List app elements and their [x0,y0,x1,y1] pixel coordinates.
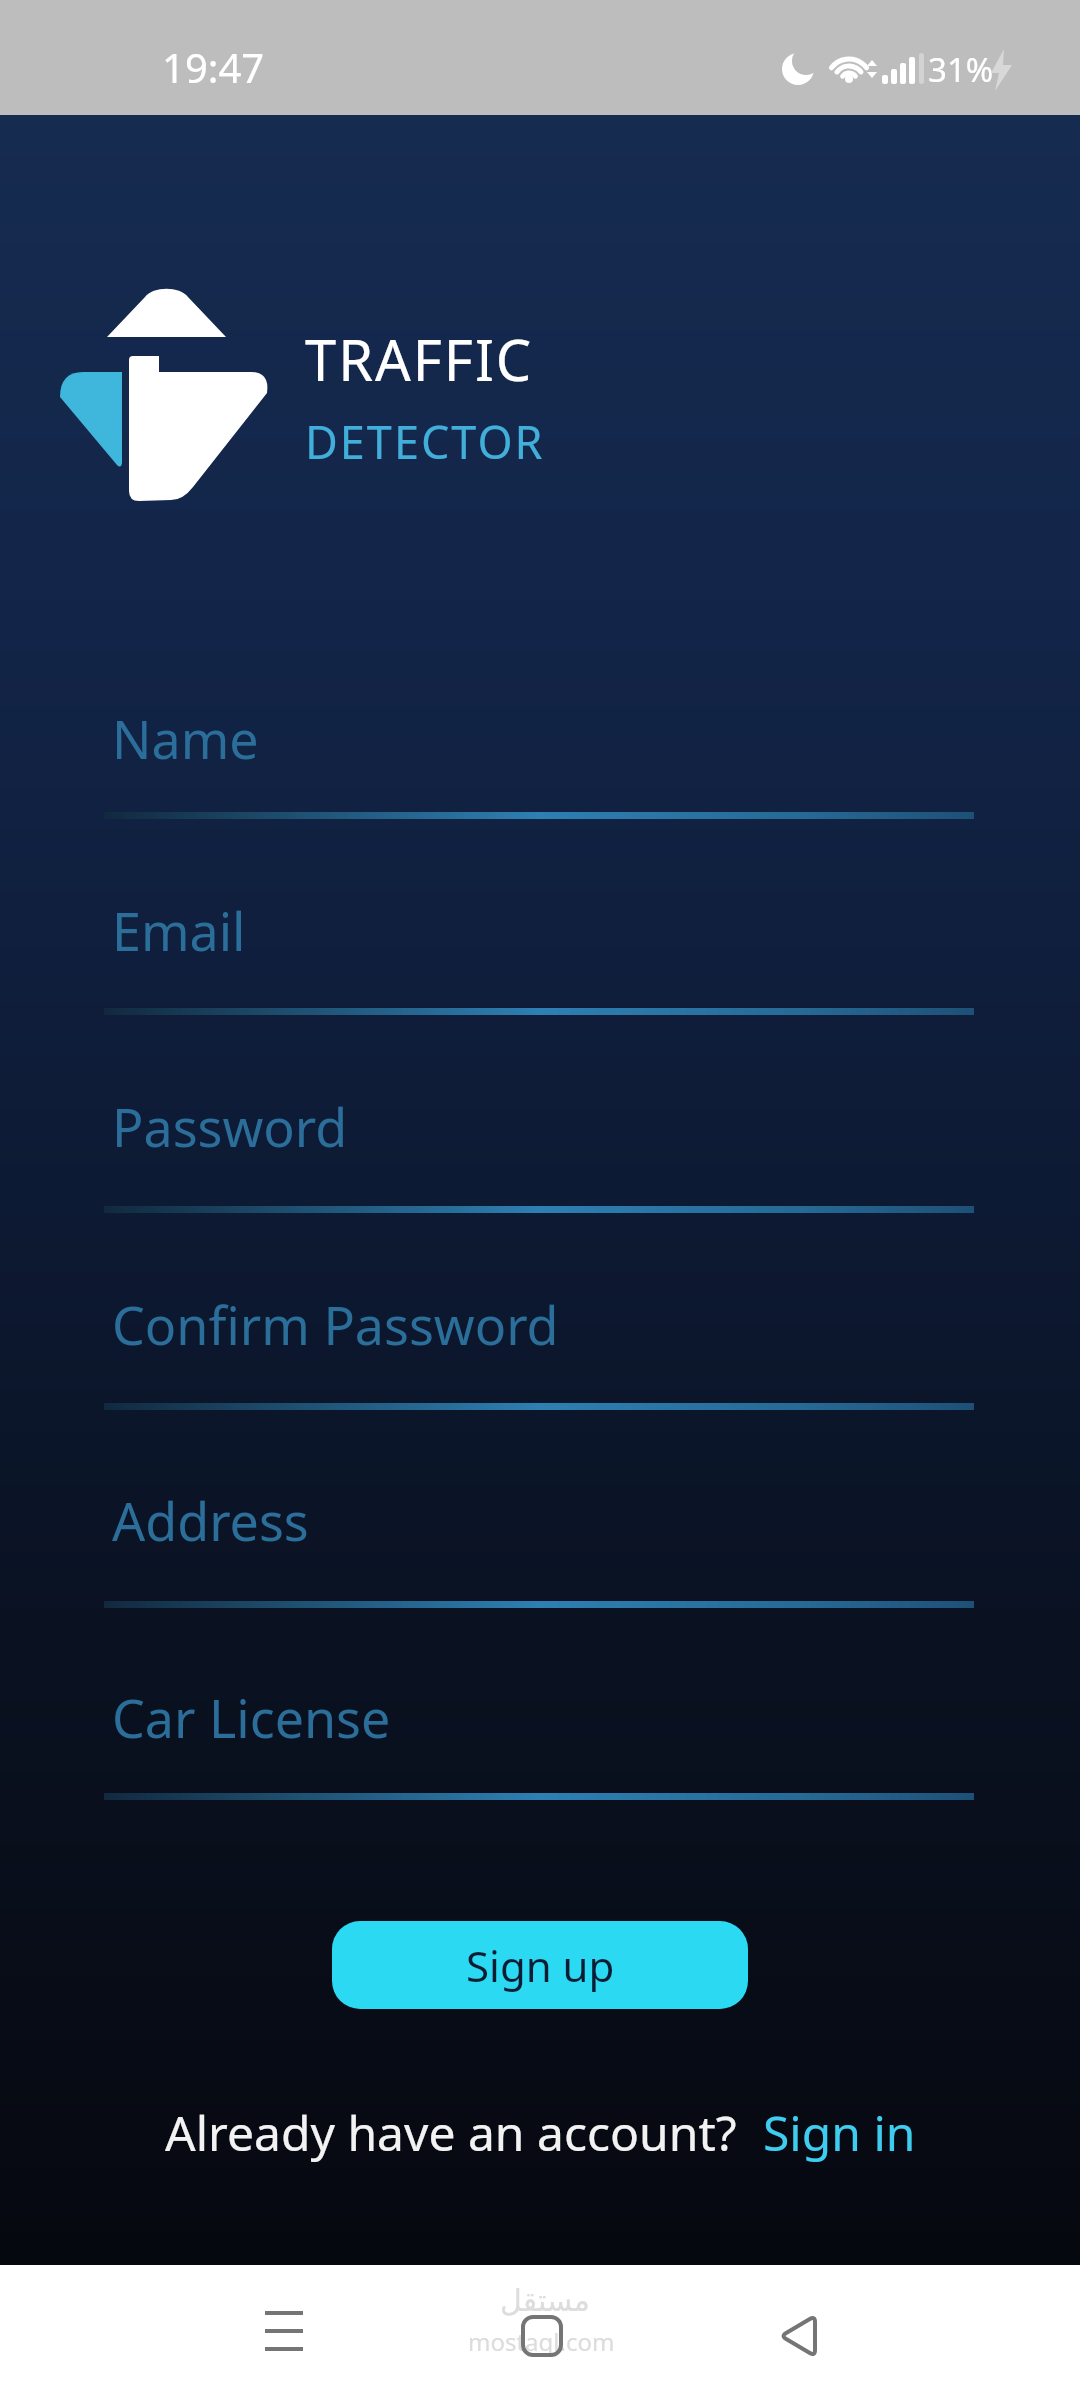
button[interactable]: Confirm Password [104,1289,974,1410]
button[interactable] [760,2293,840,2373]
button[interactable]: Car License [104,1682,974,1800]
staticText: Sign in [763,2100,916,2165]
button[interactable] [503,2293,583,2373]
staticText: mostaql.com [468,2325,615,2358]
staticText: DETECTOR [305,411,545,472]
button[interactable]: Sign up [332,1921,748,2009]
button[interactable]: Password [104,1091,974,1213]
staticText: 19:47 [162,40,265,94]
staticText: Already have an account? [165,2100,737,2165]
staticText: Confirm Password [112,1289,559,1360]
button[interactable]: Name [104,703,974,819]
staticText: TRAFFIC [305,321,534,397]
button[interactable]: Address [104,1485,974,1608]
staticText: مستقل [500,2283,590,2318]
staticText: Sign up [466,1937,615,1994]
button[interactable]: Sign in [763,2100,916,2165]
staticText: Name [112,703,259,774]
staticText: Password [112,1091,348,1162]
staticText: Address [112,1485,309,1556]
staticText: Car License [112,1682,391,1753]
button[interactable]: Email [104,895,974,1015]
button[interactable] [245,2293,325,2373]
staticText: Email [112,895,246,966]
staticText: 31% [928,47,994,92]
